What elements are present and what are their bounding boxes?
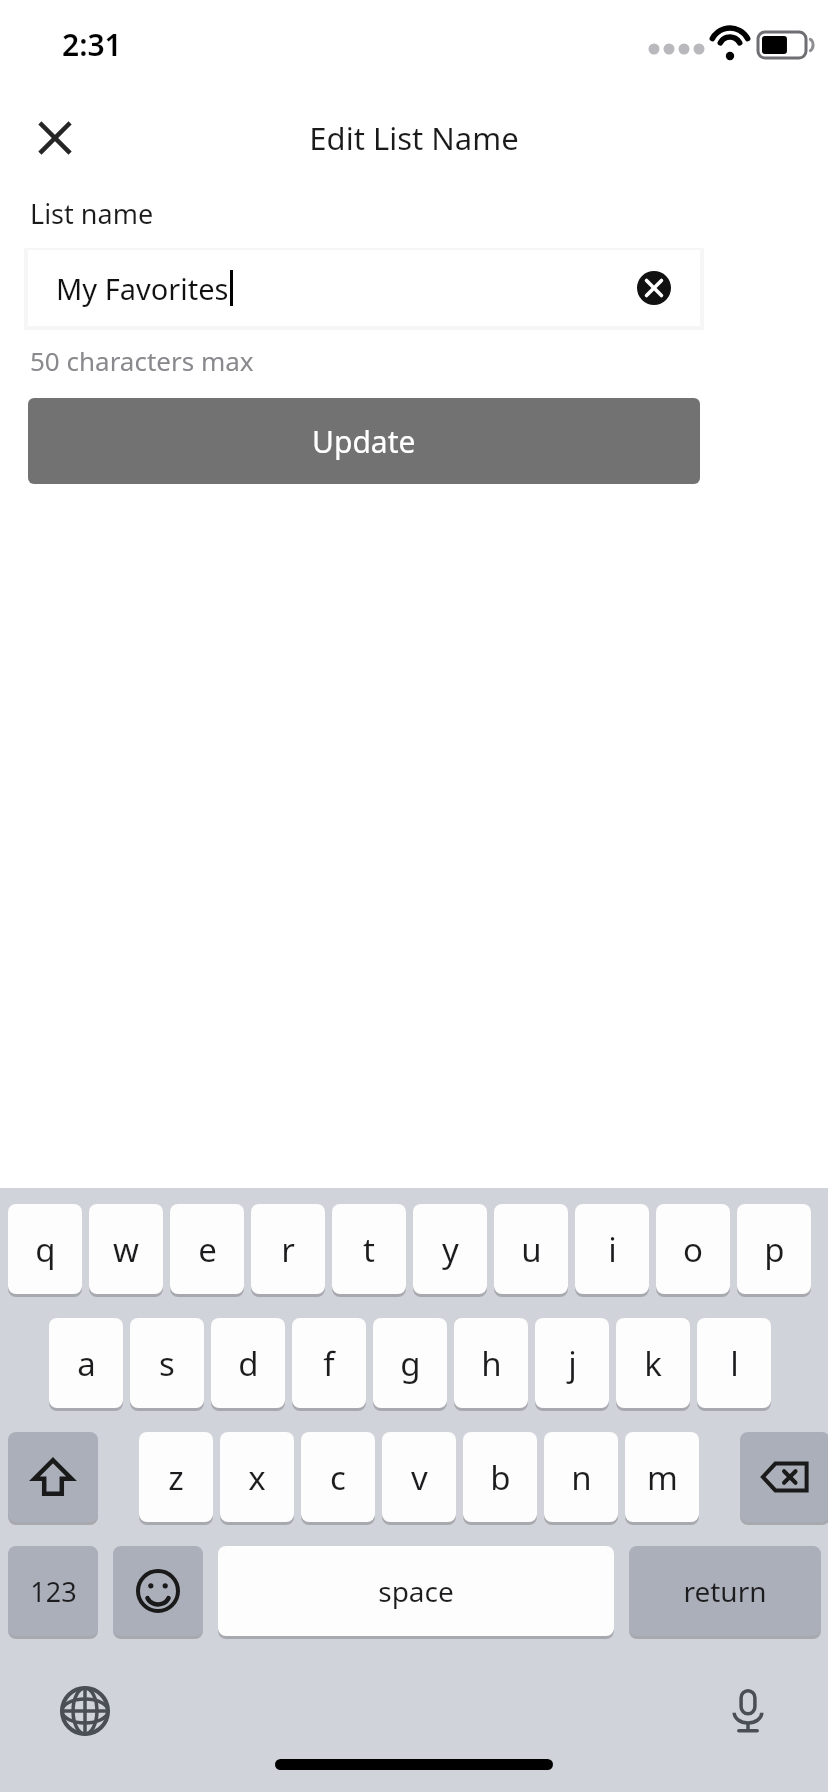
button[interactable]: o — [656, 1204, 730, 1294]
staticText: v — [411, 1455, 428, 1500]
button[interactable]: v — [382, 1432, 456, 1522]
staticText: d — [238, 1341, 259, 1386]
staticText: z — [168, 1455, 184, 1500]
staticText: e — [198, 1227, 217, 1272]
staticText: r — [281, 1227, 295, 1272]
button[interactable]: space — [218, 1546, 614, 1636]
button[interactable]: b — [463, 1432, 537, 1522]
staticText: h — [481, 1341, 502, 1386]
staticText: a — [77, 1341, 96, 1386]
button[interactable] — [8, 1432, 98, 1522]
button[interactable]: a — [49, 1318, 123, 1408]
button[interactable] — [740, 1432, 828, 1522]
button[interactable]: y — [413, 1204, 487, 1294]
staticText: x — [248, 1455, 266, 1500]
staticText: My Favorites — [56, 269, 229, 308]
button[interactable]: l — [697, 1318, 771, 1408]
button[interactable]: t — [332, 1204, 406, 1294]
button[interactable]: Close — [16, 99, 94, 177]
staticText: f — [323, 1341, 335, 1386]
staticText: 2:31 — [62, 24, 122, 65]
staticText: i — [608, 1227, 617, 1272]
button[interactable]: j — [535, 1318, 609, 1408]
staticText: o — [683, 1227, 703, 1272]
button[interactable]: z — [139, 1432, 213, 1522]
staticText: q — [35, 1227, 56, 1272]
staticText: p — [764, 1227, 785, 1272]
button[interactable]: p — [737, 1204, 811, 1294]
staticText: g — [400, 1341, 421, 1386]
button[interactable]: n — [544, 1432, 618, 1522]
button[interactable]: Update — [28, 398, 700, 484]
staticText: s — [159, 1341, 175, 1386]
button[interactable]: h — [454, 1318, 528, 1408]
button[interactable]: g — [373, 1318, 447, 1408]
staticText: k — [644, 1341, 662, 1386]
staticText: 50 characters max — [30, 343, 254, 378]
button[interactable]: Clear text — [632, 266, 676, 310]
button[interactable]: e — [170, 1204, 244, 1294]
staticText: t — [363, 1227, 375, 1272]
staticText: u — [521, 1227, 542, 1272]
button[interactable]: My Favorites — [28, 250, 700, 326]
staticText: Edit List Name — [309, 117, 519, 159]
button[interactable]: d — [211, 1318, 285, 1408]
staticText: 123 — [30, 1573, 77, 1610]
staticText: List name — [30, 195, 154, 232]
button[interactable]: u — [494, 1204, 568, 1294]
button[interactable]: Dictate — [713, 1676, 783, 1746]
button[interactable]: s — [130, 1318, 204, 1408]
button[interactable]: m — [625, 1432, 699, 1522]
button[interactable]: f — [292, 1318, 366, 1408]
staticText: w — [113, 1227, 139, 1272]
staticText: c — [330, 1455, 346, 1500]
button[interactable]: x — [220, 1432, 294, 1522]
button[interactable]: 123 — [8, 1546, 98, 1636]
button[interactable]: return — [629, 1546, 821, 1636]
staticText: Update — [312, 421, 416, 462]
button[interactable] — [113, 1546, 203, 1636]
staticText: n — [571, 1455, 592, 1500]
button[interactable]: w — [89, 1204, 163, 1294]
button[interactable]: k — [616, 1318, 690, 1408]
button[interactable]: c — [301, 1432, 375, 1522]
button[interactable]: Change keyboard language — [50, 1676, 120, 1746]
staticText: y — [442, 1227, 459, 1272]
button[interactable]: r — [251, 1204, 325, 1294]
staticText: b — [490, 1455, 511, 1500]
staticText: m — [647, 1455, 678, 1500]
staticText: l — [730, 1341, 739, 1386]
button[interactable]: i — [575, 1204, 649, 1294]
staticText: space — [378, 1572, 454, 1610]
staticText: j — [568, 1341, 577, 1386]
staticText: return — [683, 1572, 767, 1610]
button[interactable]: q — [8, 1204, 82, 1294]
